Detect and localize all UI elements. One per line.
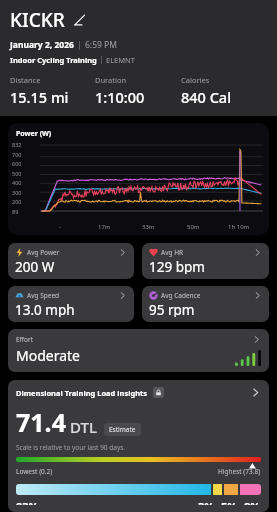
staticText: 129 bpm: [149, 258, 205, 274]
button[interactable]: Avg Power: [8, 243, 134, 279]
staticText: 400: [12, 179, 22, 186]
staticText: 600: [12, 160, 22, 167]
staticText: Scale is relative to your last 90 days.: [16, 443, 126, 452]
staticText: 1h 10m: [228, 223, 250, 231]
staticText: Effort: [16, 335, 34, 344]
staticText: Indoor Cycling Training: [10, 55, 97, 65]
staticText: Avg Speed: [27, 291, 60, 300]
staticText: Dimensional Training Load insights: [16, 388, 148, 398]
staticText: DTL: [70, 417, 97, 437]
staticText: 3%: [198, 499, 215, 505]
staticText: Moderate: [16, 346, 80, 365]
button[interactable]: Avg Cadence: [142, 286, 269, 322]
staticText: 500: [12, 170, 22, 177]
staticText: 17m: [98, 223, 111, 231]
button[interactable]: 832: [8, 123, 269, 235]
staticText: Avg HR: [161, 248, 184, 257]
staticText: 200: [12, 198, 22, 205]
staticText: Highest (73.8): [218, 467, 261, 476]
staticText: Estimate: [109, 425, 136, 434]
staticText: 83%: [16, 499, 39, 505]
staticText: 200 W: [15, 258, 55, 274]
button[interactable]: Estimate: [104, 423, 141, 436]
staticText: 50m: [187, 223, 200, 231]
staticText: Avg Cadence: [161, 291, 201, 300]
staticText: 832: [12, 141, 22, 148]
staticText: 1:10:00: [95, 87, 145, 107]
staticText: 5%: [221, 499, 238, 505]
staticText: Power (W): [16, 129, 52, 139]
staticText: KICKR: [10, 7, 65, 33]
staticText: 95 rpm: [149, 301, 195, 317]
staticText: ELEMNT: [106, 55, 135, 65]
staticText: 33m: [142, 223, 155, 231]
staticText: 13.0 mph: [15, 301, 75, 317]
staticText: Lowest (0.2): [16, 467, 53, 476]
staticText: -: [59, 223, 61, 231]
staticText: 71.4: [16, 405, 66, 439]
button[interactable]: Avg HR: [142, 243, 269, 279]
staticText: 8%: [244, 499, 261, 505]
button[interactable]: Edit name: [72, 12, 88, 28]
staticText: Avg Power: [27, 248, 60, 257]
staticText: Calories: [181, 75, 210, 85]
staticText: Distance: [10, 75, 41, 85]
staticText: 89: [12, 208, 19, 215]
button[interactable]: Effort: [8, 329, 269, 372]
staticText: 15.15 mi: [10, 87, 69, 107]
staticText: Duration: [95, 75, 127, 85]
staticText: 700: [12, 151, 22, 158]
staticText: 300: [12, 189, 22, 196]
staticText: 6:59 PM: [85, 39, 117, 51]
button[interactable]: Dimensional Training Load insights: [8, 380, 269, 512]
button[interactable]: Avg Speed: [8, 286, 134, 322]
staticText: 840 Cal: [181, 87, 232, 107]
staticText: January 2, 2026: [10, 39, 74, 51]
